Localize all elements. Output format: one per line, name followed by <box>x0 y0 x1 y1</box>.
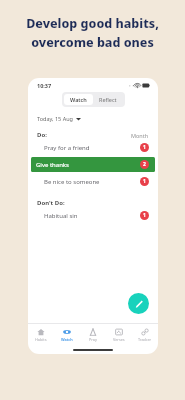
staticText: Pray <box>89 337 97 342</box>
button[interactable]: Tracker <box>132 324 158 345</box>
staticText: Verses <box>113 337 125 342</box>
staticText: overcome bad ones <box>31 34 154 51</box>
button[interactable]: Today, 15 Aug <box>28 114 158 123</box>
staticText: Month <box>131 132 149 139</box>
button[interactable]: Verses <box>106 324 132 345</box>
staticText: Watch <box>61 337 73 342</box>
staticText: Tracker <box>138 337 152 342</box>
staticText: Pray for a friend <box>44 144 90 152</box>
staticText: 1 <box>143 144 146 151</box>
staticText: Don't Do: <box>37 199 65 207</box>
button[interactable]: Watch <box>54 324 80 345</box>
button[interactable]: Give thanks <box>31 157 155 172</box>
staticText: 10:37 <box>37 82 52 89</box>
staticText: Reflect <box>99 96 117 103</box>
button[interactable]: Habitual sin <box>28 208 158 223</box>
staticText: 1 <box>143 178 146 185</box>
button[interactable]: Reflect <box>93 94 123 105</box>
button[interactable]: Pray <box>80 324 106 345</box>
staticText: Develop good habits, <box>26 15 159 32</box>
staticText: Today, 15 Aug <box>37 115 73 122</box>
button[interactable]: Pray for a friend <box>28 140 158 155</box>
staticText: 2 <box>143 161 146 168</box>
staticText: Be nice to someone <box>44 178 100 186</box>
staticText: Give thanks <box>36 161 69 169</box>
button[interactable]: Watch <box>64 94 93 105</box>
button[interactable]: Habits <box>28 324 54 345</box>
staticText: Do: <box>37 131 47 139</box>
staticText: Habitual sin <box>44 212 78 220</box>
staticText: Habits <box>35 337 47 342</box>
staticText: Watch <box>70 96 87 103</box>
button[interactable]: Be nice to someone <box>28 174 158 189</box>
button[interactable]: Add entry <box>128 293 149 314</box>
staticText: 1 <box>143 212 146 219</box>
